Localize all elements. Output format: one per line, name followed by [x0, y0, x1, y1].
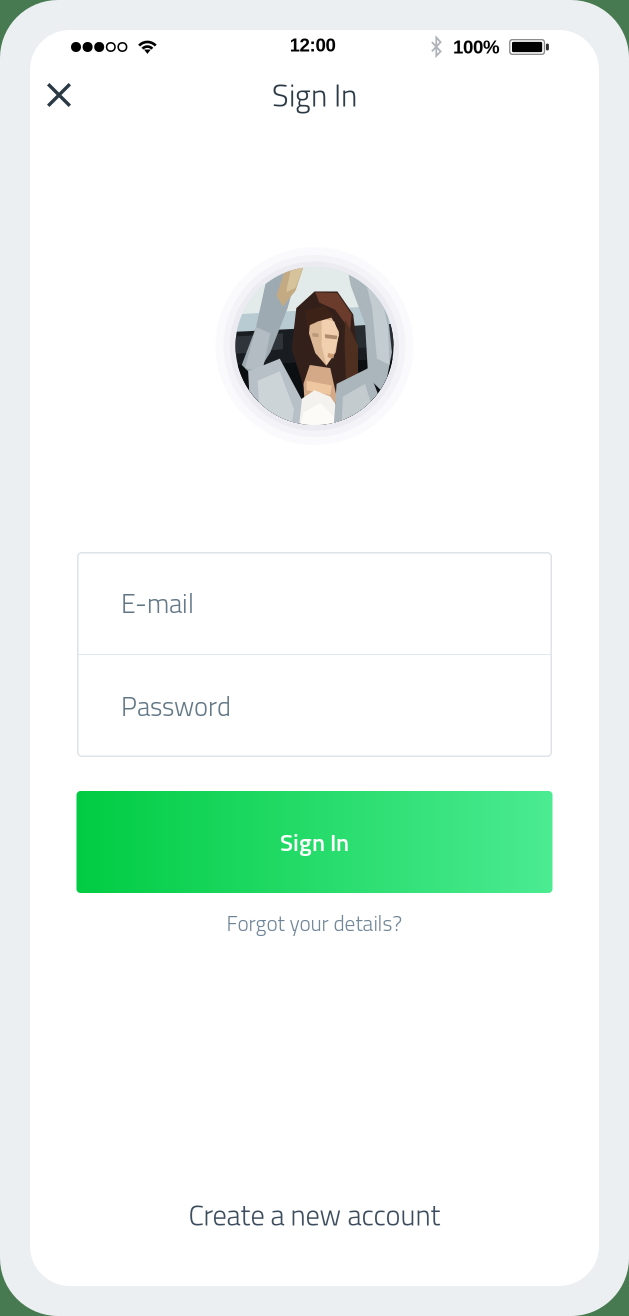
button[interactable]: E-mail: [77, 552, 552, 654]
button[interactable]: Forgot your details?: [164, 901, 464, 945]
staticText: Sign In: [280, 824, 349, 860]
button[interactable]: Create a new account: [134, 1188, 494, 1242]
staticText: 12:00: [289, 35, 335, 55]
staticText: 100%: [453, 37, 500, 57]
staticText: E-mail: [121, 583, 194, 623]
staticText: Sign In: [272, 72, 357, 118]
staticText: Create a new account: [188, 1193, 440, 1237]
staticText: Password: [121, 686, 231, 726]
button[interactable]: Sign In: [76, 791, 552, 893]
button[interactable]: Password: [77, 655, 552, 757]
staticText: Forgot your details?: [226, 907, 402, 939]
button[interactable]: Close: [30, 66, 88, 124]
